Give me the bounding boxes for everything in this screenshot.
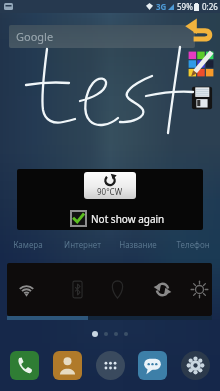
staticText: Google — [16, 29, 54, 44]
button[interactable]: Phone — [10, 351, 39, 380]
button[interactable]: Save — [188, 84, 216, 112]
staticText: 90°CW — [97, 186, 123, 197]
button[interactable]: Интернет — [55, 238, 110, 250]
button[interactable]: 90°CW — [84, 172, 136, 199]
button[interactable]: Undo — [184, 16, 216, 48]
staticText: Not show again — [91, 212, 165, 226]
button[interactable]: Bluetooth — [58, 263, 96, 316]
staticText: 0:26 — [202, 1, 218, 12]
button[interactable]: Название — [110, 238, 165, 250]
button[interactable]: Not show again — [70, 210, 165, 227]
button[interactable]: Contacts — [53, 351, 82, 380]
button[interactable]: Телефон — [165, 238, 220, 250]
button[interactable]: Apps — [96, 351, 125, 380]
button[interactable]: Google — [9, 25, 195, 48]
staticText: Телефон — [176, 239, 210, 250]
staticText: 59% — [177, 1, 193, 12]
staticText: Камера — [13, 239, 43, 250]
button[interactable]: Colors — [188, 51, 214, 77]
button[interactable]: Settings — [181, 351, 210, 380]
button[interactable]: Messages — [138, 351, 167, 380]
staticText: Название — [119, 239, 157, 250]
button[interactable]: Brightness — [180, 263, 212, 316]
staticText: 3G — [156, 1, 167, 12]
button[interactable]: Камера — [0, 238, 55, 250]
button[interactable]: Sync — [143, 263, 181, 316]
staticText: Интернет — [64, 239, 101, 250]
button[interactable]: Wi-Fi — [7, 263, 45, 316]
button[interactable]: GPS — [98, 263, 136, 316]
